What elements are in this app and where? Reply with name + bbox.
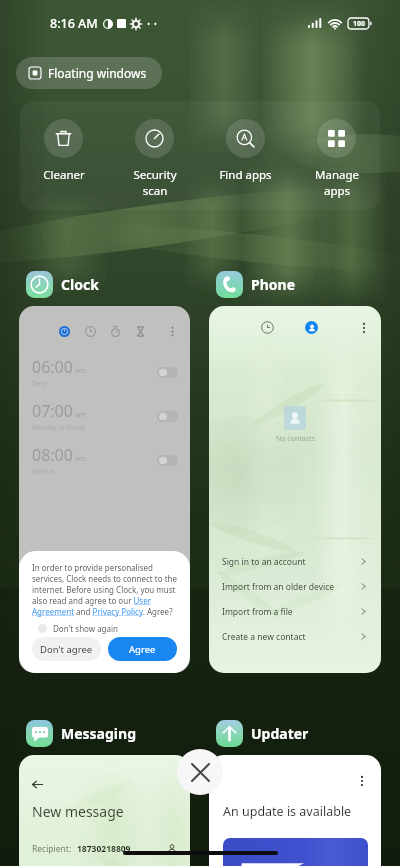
- staticText: Create a new contact: [222, 631, 306, 643]
- staticText: Agree: [129, 643, 156, 656]
- button[interactable]: Cleaner: [18, 119, 109, 183]
- button[interactable]: Updater: [216, 720, 309, 747]
- staticText: am: [75, 366, 86, 376]
- staticText: Updater: [251, 724, 309, 743]
- staticText: 08:00: [32, 444, 73, 466]
- staticText: Phone: [251, 275, 296, 294]
- staticText: Sign in to an account: [222, 556, 306, 568]
- button[interactable]: New message: [19, 755, 190, 866]
- staticText: 8:16 AM: [50, 15, 98, 32]
- staticText: In order to provide personalised service…: [32, 562, 179, 617]
- staticText: Recipient:: [32, 843, 72, 855]
- staticText: 06:00: [32, 356, 73, 378]
- staticText: Don't agree: [40, 643, 93, 656]
- staticText: am: [75, 454, 86, 464]
- button[interactable]: Import from an older device: [222, 574, 367, 599]
- button[interactable]: Security scan: [109, 119, 200, 199]
- staticText: Sat Sun: [32, 467, 55, 476]
- staticText: Messaging: [61, 724, 136, 743]
- button[interactable]: Create a new contact: [222, 624, 367, 649]
- staticText: Manage apps: [315, 167, 359, 199]
- staticText: Cleaner: [43, 167, 85, 183]
- staticText: am: [75, 410, 86, 420]
- staticText: Import from an older device: [222, 581, 335, 593]
- staticText: Monday to Friday: [32, 423, 86, 432]
- button[interactable]: No contacts: [209, 306, 381, 673]
- staticText: Daily: [32, 379, 48, 388]
- button[interactable]: Don't show again: [38, 623, 119, 634]
- staticText: 07:00: [32, 400, 73, 422]
- button[interactable]: 06:00: [19, 306, 190, 673]
- button[interactable]: Floating windows: [16, 57, 162, 89]
- button[interactable]: An update is available: [209, 755, 381, 866]
- button[interactable]: Manage apps: [291, 119, 382, 199]
- button[interactable]: Import from a file: [222, 599, 367, 624]
- button[interactable]: Sign in to an account: [222, 549, 367, 574]
- staticText: Don't show again: [53, 623, 119, 634]
- button[interactable]: Close all: [177, 749, 223, 795]
- staticText: 18730218809: [77, 843, 131, 855]
- button[interactable]: Phone: [216, 271, 296, 298]
- staticText: Find apps: [219, 167, 272, 183]
- button[interactable]: Find apps: [200, 119, 291, 183]
- staticText: An update is available: [223, 803, 352, 820]
- staticText: No contacts: [276, 434, 315, 444]
- button[interactable]: Agree: [108, 637, 177, 661]
- staticText: Floating windows: [48, 65, 147, 81]
- staticText: Security scan: [133, 167, 177, 199]
- button[interactable]: Clock: [26, 271, 99, 298]
- button[interactable]: Don't agree: [32, 637, 101, 661]
- button[interactable]: Messaging: [26, 720, 136, 747]
- staticText: 100: [353, 19, 366, 29]
- staticText: New message: [32, 802, 124, 821]
- staticText: Clock: [61, 275, 99, 294]
- staticText: Import from a file: [222, 606, 293, 618]
